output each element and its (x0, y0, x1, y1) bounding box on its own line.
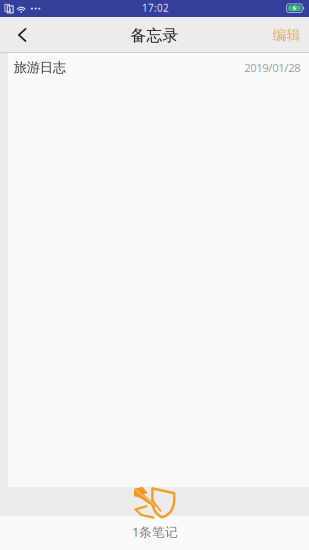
staticText: 编辑 (273, 26, 301, 44)
staticText: 备忘录 (130, 26, 178, 45)
staticText: 2019/01/28 (244, 60, 300, 75)
staticText: 旅游日志 (14, 59, 66, 76)
button[interactable]: Back (4, 17, 40, 53)
button[interactable]: 编辑 (265, 17, 309, 53)
staticText: 17:02 (142, 1, 169, 15)
staticText: 1条笔记 (132, 523, 178, 540)
button[interactable]: 旅游日志 (8, 53, 309, 96)
